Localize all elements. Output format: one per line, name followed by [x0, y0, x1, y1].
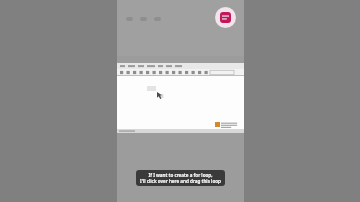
staticText: If I want to create a for loop, I'll cli…: [140, 172, 221, 184]
button[interactable]: If I want to create a for loop, I'll cli…: [136, 170, 225, 186]
button[interactable]: Stop recording: [215, 7, 236, 28]
